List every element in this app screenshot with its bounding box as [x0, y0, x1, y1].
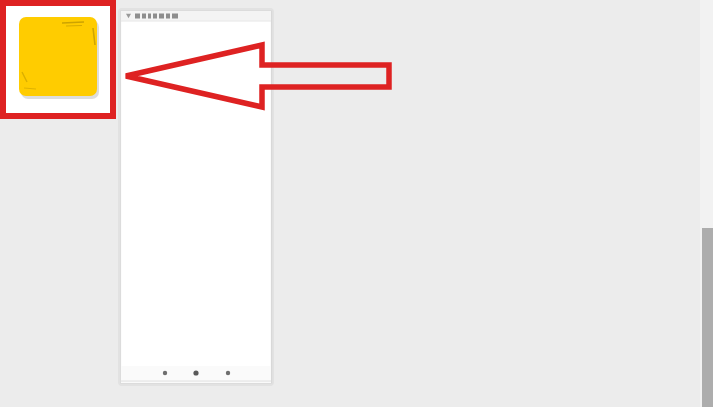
- button[interactable]: Highlighted app icon: [0, 0, 713, 407]
- button[interactable]: Phone screen preview: [0, 0, 713, 407]
- button[interactable]: Annotation arrow pointing to app icon: [0, 0, 713, 407]
